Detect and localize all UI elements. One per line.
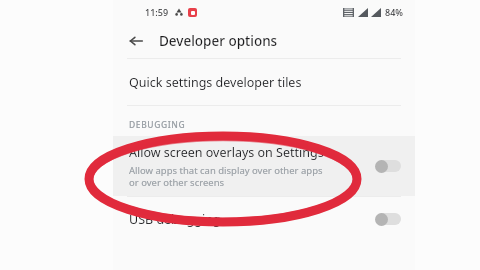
staticText: USB debugging <box>129 211 373 228</box>
button[interactable]: Allow screen overlays on Settings <box>113 136 415 196</box>
button[interactable]: Toggle off <box>373 159 403 173</box>
button[interactable]: Quick settings developer tiles <box>113 59 415 105</box>
staticText: Allow apps that can display over other a… <box>129 164 323 189</box>
button[interactable]: Toggle off <box>373 212 403 226</box>
staticText: Allow screen overlays on Settings <box>129 144 324 161</box>
button[interactable]: Back <box>125 30 147 52</box>
staticText: 84% <box>385 6 403 18</box>
button[interactable]: USB debugging <box>113 197 415 241</box>
staticText: Quick settings developer tiles <box>129 74 302 91</box>
staticText: 11:59 <box>145 6 169 18</box>
staticText: Developer options <box>159 32 278 50</box>
staticText: DEBUGGING <box>129 119 186 131</box>
